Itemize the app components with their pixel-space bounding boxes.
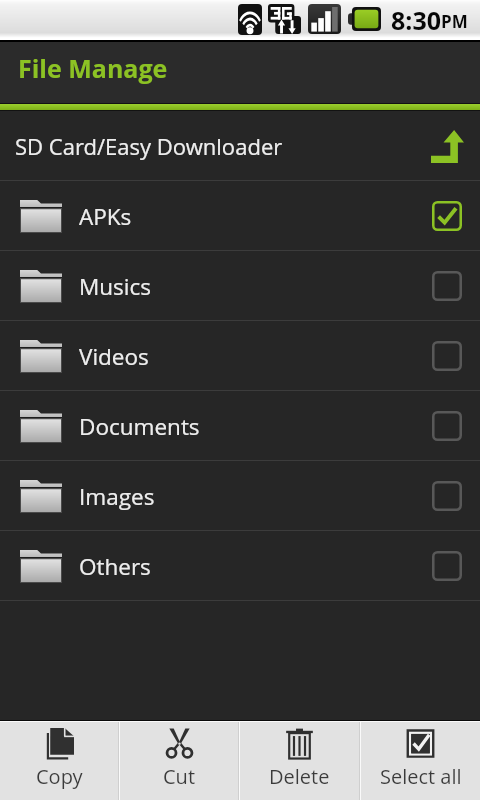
button[interactable]: Others [0,531,480,601]
staticText: Documents [79,411,200,442]
button[interactable]: SD Card/Easy Downloader [0,111,480,181]
button[interactable]: Delete [240,722,359,800]
other: Up one level [431,130,464,163]
staticText: 8:30 [391,3,441,37]
staticText: Images [79,481,155,512]
staticText: Delete [269,763,330,790]
staticText: Musics [79,271,151,302]
button[interactable]: Select all [361,722,480,800]
button[interactable]: Musics [0,251,480,321]
button[interactable]: APKs [0,181,480,251]
staticText: PM [441,10,468,33]
staticText: SD Card/Easy Downloader [15,131,283,161]
staticText: Select all [380,763,462,790]
button[interactable]: Videos [0,321,480,391]
staticText: Cut [163,763,195,790]
button[interactable]: Copy [0,722,118,800]
staticText: File Manage [18,51,168,85]
staticText: Others [79,551,151,582]
staticText: Copy [36,763,83,790]
button[interactable]: Images [0,461,480,531]
staticText: APKs [79,201,132,232]
button[interactable]: Documents [0,391,480,461]
staticText: Videos [79,341,149,372]
button[interactable]: Cut [120,722,238,800]
